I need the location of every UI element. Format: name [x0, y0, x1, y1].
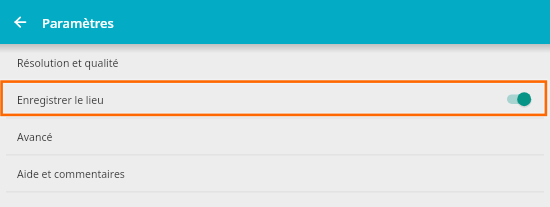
button[interactable]: Enregistrer le lieu	[0, 81, 550, 118]
staticText: Paramètres	[42, 14, 114, 32]
button[interactable]: Retour	[9, 9, 35, 35]
button[interactable]: Aide et commentaires	[0, 155, 550, 192]
button[interactable]: Résolution et qualité	[0, 44, 550, 81]
staticText: Avancé	[17, 130, 53, 144]
button[interactable]: Avancé	[0, 118, 550, 155]
button[interactable]: Enregistrer le lieu, activé	[507, 90, 532, 110]
staticText: Enregistrer le lieu	[17, 93, 104, 107]
staticText: Résolution et qualité	[17, 56, 119, 70]
staticText: Aide et commentaires	[17, 167, 125, 181]
